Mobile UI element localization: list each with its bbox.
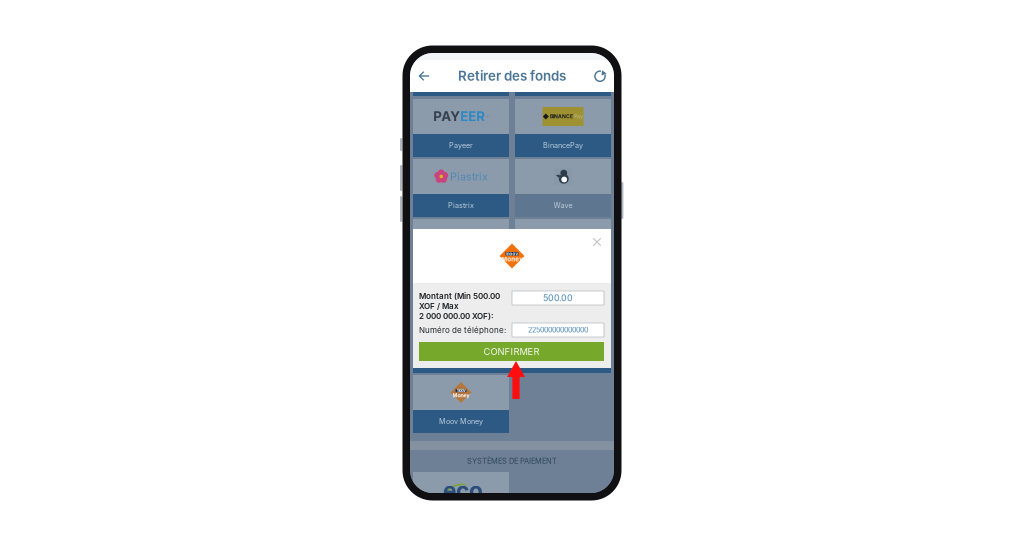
button[interactable]: 500.00 <box>512 291 604 305</box>
staticText: CONFIRMER <box>483 346 539 357</box>
staticText: Wari <box>549 289 576 304</box>
staticText: Retirer des fonds <box>458 68 566 84</box>
staticText: Montant (Min 500.00 <box>419 291 500 301</box>
button[interactable]: CONFIRMER <box>419 342 604 361</box>
button[interactable]: Refresh <box>586 60 614 92</box>
staticText: Free <box>446 288 475 304</box>
button[interactable]: MTN <box>515 219 611 277</box>
staticText: Payeer <box>449 141 473 150</box>
staticText: SYSTÈMES DE PAIEMENT <box>467 456 557 465</box>
button[interactable]: Free <box>413 279 509 337</box>
button[interactable]: Close <box>588 233 606 251</box>
staticText: OM <box>450 228 472 244</box>
button[interactable]: BINANCE <box>515 99 611 157</box>
staticText: 225000000000000 <box>528 326 588 334</box>
staticText: Numéro de téléphone: <box>419 325 506 335</box>
button[interactable]: Back <box>410 60 438 92</box>
staticText: 2 000 000.00 XOF): <box>419 311 494 321</box>
staticText: moov <box>456 388 465 393</box>
staticText: EER <box>460 108 485 124</box>
staticText: Pay <box>574 113 583 119</box>
staticText: Piastrix <box>450 170 488 183</box>
staticText: eco <box>443 477 483 504</box>
button[interactable]: Wave <box>515 159 611 217</box>
staticText: Wari <box>555 321 571 330</box>
staticText: Money <box>452 392 469 398</box>
staticText: Wave <box>553 201 572 210</box>
staticText: Money <box>501 256 523 263</box>
button[interactable]: PAY <box>413 99 509 157</box>
staticText: PAY <box>433 108 460 124</box>
staticText: moov <box>505 251 518 256</box>
staticText: Piastrix <box>448 201 474 210</box>
button[interactable]: Wari <box>515 279 611 337</box>
staticText: XOF / Max <box>419 301 459 311</box>
button[interactable]: 225000000000000 <box>512 323 604 337</box>
button[interactable]: moov <box>413 375 509 433</box>
staticText: Moov Money <box>439 417 483 426</box>
button[interactable]: OM <box>413 219 509 277</box>
staticText: BINANCE <box>550 113 573 119</box>
button[interactable]: Piastrix <box>413 159 509 217</box>
staticText: BinancePay <box>543 141 583 150</box>
staticText: 500.00 <box>543 293 573 303</box>
staticText: Free Money <box>441 321 481 330</box>
